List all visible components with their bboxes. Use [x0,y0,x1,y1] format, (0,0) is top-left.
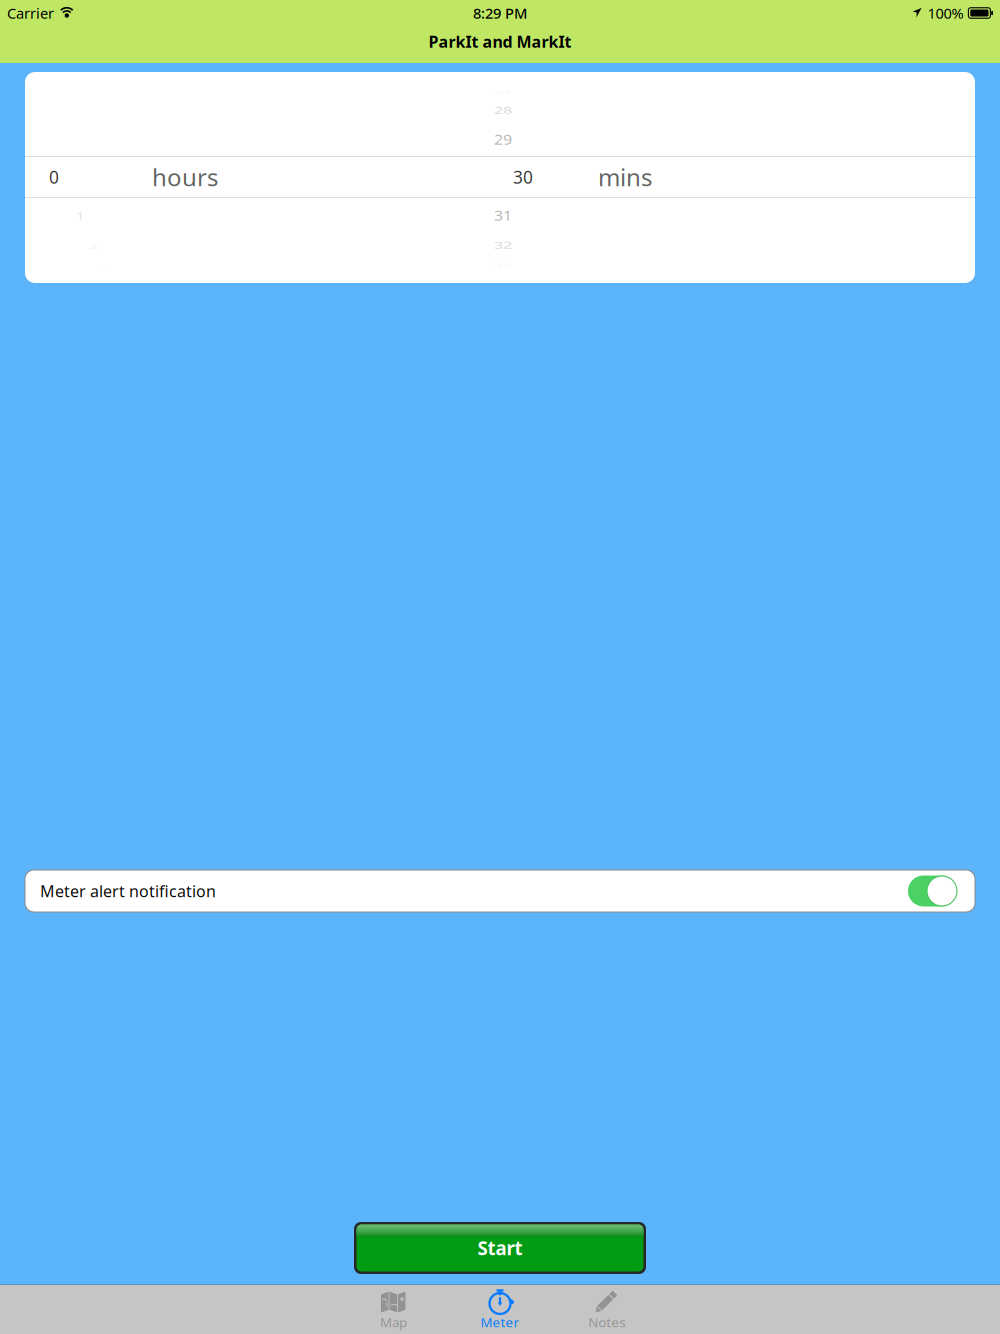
button[interactable]: Meter alert notification [25,870,975,912]
staticText: Notes [588,1313,625,1331]
staticText: 0 [49,165,59,188]
staticText: Carrier [7,3,54,23]
staticText: 31 [494,204,512,226]
staticText: hours [152,161,218,193]
staticText: Meter [480,1313,519,1331]
staticText: 28 [494,99,512,121]
staticText: Start [477,1236,522,1260]
button[interactable]: Map [341,1285,447,1334]
staticText: 32 [494,234,512,256]
button[interactable]: Meter [447,1285,553,1334]
button[interactable]: Notes [554,1285,660,1334]
staticText: 1 [76,206,84,226]
staticText: 30 [513,165,533,188]
staticText: mins [598,161,652,193]
staticText: ParkIt and MarkIt [428,31,571,52]
staticText: Meter alert notification [40,880,216,902]
button[interactable]: 27 [500,72,975,283]
button[interactable]: 1 [25,72,500,283]
staticText: Map [380,1313,407,1331]
staticText: 8:29 PM [473,3,527,23]
button[interactable]: Start [354,1222,646,1274]
staticText: 100% [927,3,963,23]
staticText: 29 [494,128,512,150]
